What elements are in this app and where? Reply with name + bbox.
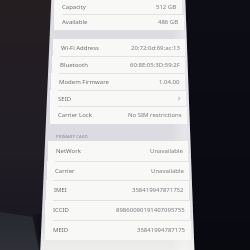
other: Open SEID bbox=[177, 95, 181, 102]
staticText: Carrier Lock bbox=[58, 111, 92, 119]
staticText: Capacity bbox=[62, 3, 86, 11]
staticText: Modem Firmware bbox=[59, 78, 109, 86]
button[interactable] bbox=[45, 220, 191, 240]
staticText: 60:8E:05:3D:59:2F bbox=[130, 61, 180, 69]
button[interactable] bbox=[48, 141, 188, 161]
button[interactable] bbox=[45, 200, 190, 220]
staticText: 512 GB bbox=[156, 3, 177, 11]
staticText: NetWork bbox=[56, 147, 81, 155]
button[interactable] bbox=[46, 180, 189, 200]
staticText: MEID bbox=[53, 226, 69, 234]
staticText: 486 GB bbox=[158, 18, 179, 26]
button[interactable] bbox=[47, 161, 189, 181]
staticText: Wi-Fi Address bbox=[61, 44, 99, 52]
staticText: SEID bbox=[58, 95, 72, 103]
staticText: 89860090191407095755 bbox=[116, 206, 185, 214]
staticText: 1.04.00 bbox=[159, 78, 180, 86]
staticText: Available bbox=[62, 18, 88, 26]
staticText: PRIMARY CARD bbox=[56, 134, 88, 140]
staticText: No SIM restrictions bbox=[128, 111, 182, 119]
button[interactable] bbox=[51, 73, 185, 91]
button[interactable] bbox=[50, 106, 187, 124]
staticText: Carrier bbox=[55, 167, 75, 175]
staticText: 20:72:0d:69:ac:13 bbox=[131, 44, 180, 52]
staticText: Bluetooth bbox=[60, 61, 88, 69]
staticText: IMEI bbox=[54, 186, 67, 194]
button[interactable] bbox=[53, 39, 185, 57]
button[interactable] bbox=[52, 56, 185, 74]
staticText: Unavailable bbox=[151, 167, 184, 175]
button[interactable] bbox=[54, 0, 182, 15]
staticText: 358419947871752 bbox=[132, 186, 184, 194]
staticText: ICCID bbox=[53, 206, 69, 214]
staticText: Unavailable bbox=[150, 147, 183, 155]
button[interactable] bbox=[54, 14, 184, 30]
button[interactable] bbox=[50, 90, 186, 108]
staticText: 35841994787175 bbox=[137, 226, 186, 234]
